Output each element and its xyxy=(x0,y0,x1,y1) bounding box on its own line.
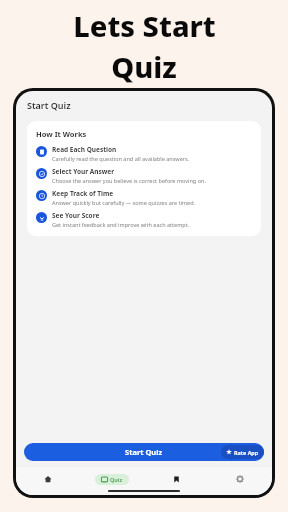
button[interactable]: Bookmarks xyxy=(144,471,208,487)
staticText: Start Quiz xyxy=(125,447,163,457)
staticText: Choose the answer you believe is correct… xyxy=(52,177,206,184)
staticText: Quiz xyxy=(110,476,123,483)
button[interactable]: Keep Track of Time xyxy=(36,189,252,206)
staticText: Answer quickly but carefully — some quiz… xyxy=(52,199,196,206)
staticText: See Your Score xyxy=(52,211,100,220)
button[interactable]: See Your Score xyxy=(36,211,252,228)
button[interactable]: Home xyxy=(16,471,80,487)
staticText: Read Each Question xyxy=(52,145,117,154)
button[interactable]: Select Your Answer xyxy=(36,167,252,184)
staticText: Get instant feedback and improve with ea… xyxy=(52,221,190,228)
button[interactable]: Settings xyxy=(208,471,272,487)
staticText: Rate App xyxy=(234,449,259,456)
button[interactable]: Quiz xyxy=(95,474,129,485)
staticText: Quiz xyxy=(111,47,177,86)
button[interactable]: Read Each Question xyxy=(36,145,252,162)
button[interactable]: Rate App xyxy=(221,445,264,459)
staticText: How It Works xyxy=(36,129,87,139)
staticText: Select Your Answer xyxy=(52,167,115,176)
staticText: Lets Start xyxy=(73,6,216,45)
staticText: Start Quiz xyxy=(27,99,71,111)
staticText: Carefully read the question and all avai… xyxy=(52,155,190,162)
button[interactable]: Start Quiz xyxy=(24,443,264,461)
staticText: Keep Track of Time xyxy=(52,189,114,198)
